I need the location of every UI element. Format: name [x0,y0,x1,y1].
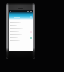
button[interactable] [10,27,32,30]
button[interactable] [10,24,32,27]
button[interactable] [10,30,32,33]
button[interactable]: Menu [10,16,13,19]
button[interactable] [10,36,32,39]
button[interactable] [10,21,32,24]
button[interactable] [10,39,32,42]
button[interactable]: Menu [9,12,33,20]
button[interactable] [10,33,32,36]
button[interactable]: Search [30,16,32,18]
